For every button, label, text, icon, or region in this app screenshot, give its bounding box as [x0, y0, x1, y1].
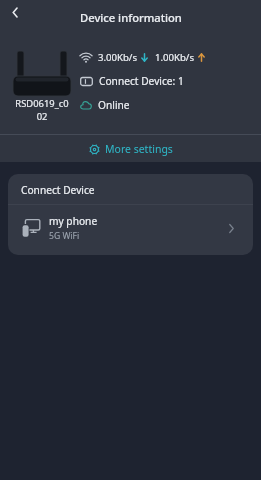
staticText: 1.00Kb/s — [155, 51, 195, 64]
button[interactable] — [7, 4, 24, 21]
staticText: Connect Device: 1 — [99, 74, 184, 88]
staticText: 3.00Kb/s — [98, 51, 138, 64]
button[interactable]: my phone — [8, 205, 253, 255]
staticText: More settings — [105, 142, 173, 156]
staticText: Device information — [80, 10, 182, 25]
staticText: RSD0619_c0 02 — [15, 97, 69, 123]
staticText: 5G WiFi — [49, 230, 80, 242]
button[interactable]: More settings — [81, 138, 181, 160]
staticText: my phone — [49, 214, 98, 228]
staticText: Online — [98, 98, 130, 112]
staticText: Connect Device — [21, 183, 95, 197]
